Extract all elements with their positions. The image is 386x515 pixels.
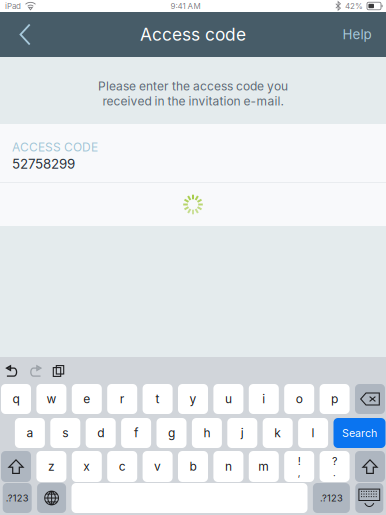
- button[interactable]: j: [227, 418, 257, 448]
- button[interactable]: Shift: [1, 451, 31, 482]
- button[interactable]: e: [72, 384, 102, 414]
- button[interactable]: h: [192, 418, 222, 448]
- button[interactable]: !: [284, 451, 314, 482]
- button[interactable]: i: [249, 384, 279, 414]
- button[interactable]: t: [143, 384, 173, 414]
- staticText: w: [46, 392, 56, 406]
- staticText: s: [62, 426, 68, 440]
- button[interactable]: v: [143, 451, 173, 482]
- staticText: Please enter the access code you: [98, 79, 288, 93]
- button[interactable]: u: [213, 384, 243, 414]
- button[interactable]: l: [298, 418, 328, 448]
- button[interactable]: Hide keyboard: [355, 483, 383, 513]
- button[interactable]: r: [107, 384, 137, 414]
- button[interactable]: Numbers: [313, 483, 350, 513]
- staticText: iPad: [5, 1, 21, 11]
- button[interactable]: Undo: [1, 359, 24, 383]
- button[interactable]: w: [36, 384, 66, 414]
- button[interactable]: Paste: [47, 359, 70, 383]
- staticText: v: [154, 459, 161, 474]
- staticText: t: [156, 392, 160, 406]
- staticText: c: [119, 459, 126, 474]
- staticText: k: [274, 426, 281, 440]
- staticText: .?123: [320, 492, 343, 503]
- staticText: ?: [332, 455, 337, 467]
- button[interactable]: z: [36, 451, 66, 482]
- button[interactable]: ?: [320, 451, 350, 482]
- button[interactable]: p: [320, 384, 350, 414]
- button[interactable]: k: [263, 418, 293, 448]
- staticText: .: [333, 467, 336, 478]
- staticText: o: [296, 392, 303, 406]
- staticText: b: [189, 459, 196, 474]
- button[interactable]: d: [86, 418, 116, 448]
- button[interactable]: y: [178, 384, 208, 414]
- staticText: !: [298, 455, 301, 467]
- button[interactable]: Help: [328, 12, 386, 57]
- staticText: n: [225, 459, 232, 474]
- button[interactable]: g: [156, 418, 186, 448]
- button[interactable]: Numbers: [3, 483, 32, 513]
- button[interactable]: x: [72, 451, 102, 482]
- staticText: x: [83, 459, 90, 474]
- button[interactable]: m: [249, 451, 279, 482]
- button[interactable]: Search: [333, 418, 385, 448]
- button[interactable]: o: [284, 384, 314, 414]
- staticText: h: [203, 426, 210, 440]
- staticText: y: [189, 392, 196, 406]
- staticText: z: [48, 459, 55, 474]
- staticText: Help: [342, 27, 371, 42]
- button[interactable]: Next keyboard: [37, 483, 66, 513]
- staticText: e: [83, 392, 90, 406]
- staticText: 9:41 AM: [170, 1, 200, 11]
- staticText: 52758299: [12, 156, 75, 172]
- staticText: Access code: [140, 24, 246, 45]
- staticText: g: [168, 426, 175, 440]
- staticText: .?123: [6, 492, 29, 503]
- button[interactable]: f: [121, 418, 151, 448]
- staticText: p: [331, 392, 338, 406]
- staticText: a: [26, 426, 33, 440]
- button[interactable]: n: [213, 451, 243, 482]
- staticText: i: [262, 392, 265, 406]
- button[interactable]: s: [50, 418, 80, 448]
- button[interactable]: c: [107, 451, 137, 482]
- button[interactable]: Redo: [24, 359, 47, 383]
- button[interactable]: Shift: [355, 451, 385, 482]
- staticText: 42%: [345, 1, 363, 11]
- button[interactable]: a: [15, 418, 45, 448]
- staticText: received in the invitation e-mail.: [102, 94, 283, 108]
- staticText: r: [120, 392, 125, 406]
- staticText: j: [241, 426, 244, 440]
- staticText: ,: [298, 467, 301, 478]
- staticText: d: [97, 426, 104, 440]
- button[interactable]: Delete: [355, 384, 385, 414]
- staticText: m: [258, 459, 269, 474]
- button[interactable]: q: [1, 384, 31, 414]
- staticText: q: [12, 392, 19, 406]
- staticText: l: [312, 426, 315, 440]
- button[interactable]: Back: [0, 12, 50, 57]
- button[interactable]: b: [178, 451, 208, 482]
- staticText: Search: [342, 427, 377, 439]
- staticText: ACCESS CODE: [12, 140, 98, 154]
- staticText: u: [225, 392, 232, 406]
- staticText: f: [134, 426, 138, 440]
